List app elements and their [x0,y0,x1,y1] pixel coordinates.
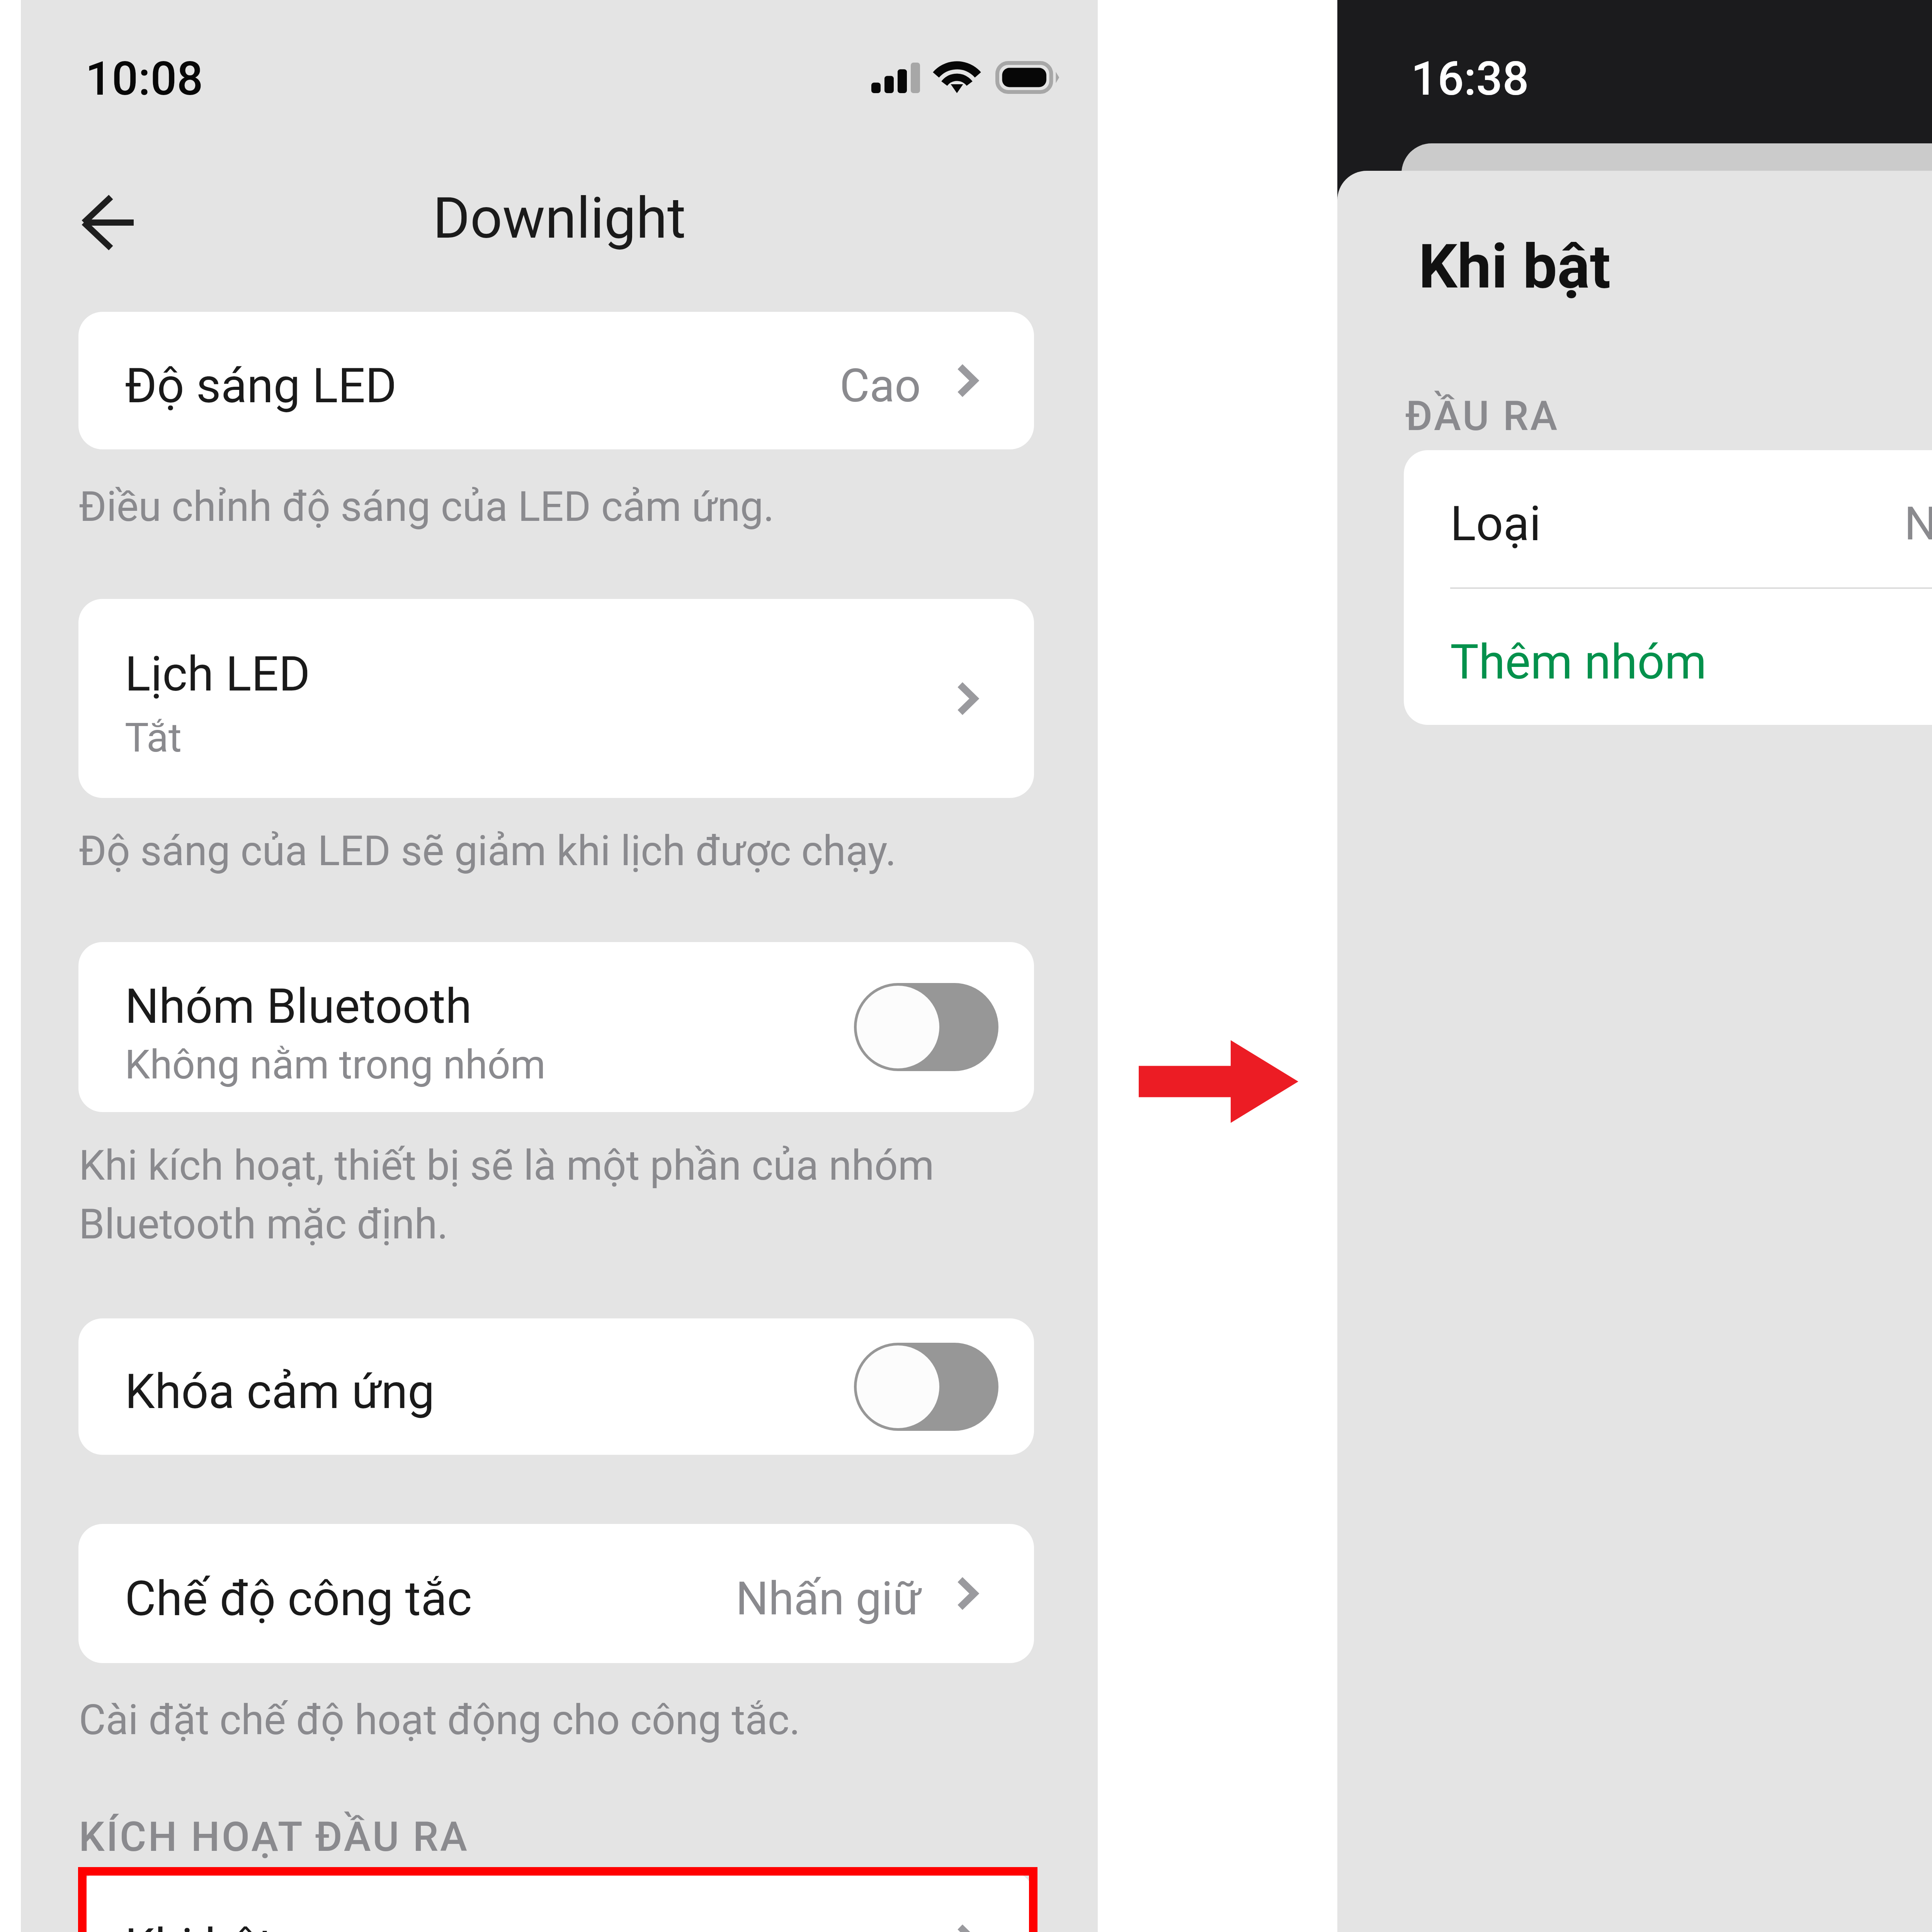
staticText: 10:08 [85,52,203,106]
button[interactable]: Nhóm Bluetooth [78,942,1034,1112]
staticText: Nhóm chiếu sáng [1904,497,1932,551]
staticText: Không nằm trong nhóm [125,1041,546,1088]
staticText: 16:38 [1411,52,1529,106]
staticText: Khi kích hoạt, thiết bị sẽ là một phần c… [79,1141,1053,1248]
staticText: Độ sáng của LED sẽ giảm khi lịch được ch… [79,827,1053,875]
button[interactable]: Loại [1404,450,1932,587]
staticText: Tắt [125,714,182,762]
button[interactable]: Thêm nhóm [1404,589,1932,725]
staticText: Cao [840,359,921,413]
staticText: Khi bật [1418,231,1611,302]
button[interactable]: Khi bật [78,1872,1034,1932]
button[interactable]: Toggle [854,1343,998,1431]
button[interactable]: Lịch LED [78,599,1034,798]
staticText: Lịch LED [125,646,310,702]
staticText: Nhấn giữ [736,1572,921,1626]
button[interactable]: Độ sáng LED [78,312,1034,449]
staticText: KÍCH HOẠT ĐẦU RA [79,1813,469,1861]
staticText: ĐẦU RA [1405,393,1560,440]
staticText: Khóa cảm ứng [125,1364,435,1420]
staticText: Khi bật [125,1918,274,1932]
button[interactable]: Toggle [854,983,998,1071]
staticText: Cài đặt chế độ hoạt động cho công tắc. [79,1696,1053,1744]
staticText: Loại [1450,496,1541,552]
button[interactable]: Back [68,183,146,262]
staticText: Chế độ công tắc [125,1571,472,1627]
button[interactable]: Khóa cảm ứng [78,1318,1034,1455]
staticText: Downlight [433,185,686,252]
button[interactable]: Chế độ công tắc [78,1524,1034,1663]
staticText: Điều chỉnh độ sáng của LED cảm ứng. [79,483,1053,531]
staticText: Thêm nhóm [1450,634,1707,690]
staticText: Nhóm Bluetooth [125,978,472,1034]
staticText: Độ sáng LED [125,358,397,414]
